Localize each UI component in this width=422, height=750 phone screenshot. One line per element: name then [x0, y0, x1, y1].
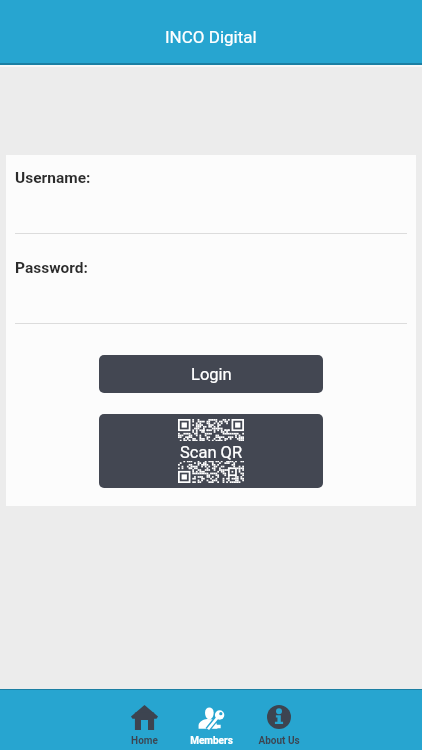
staticText: Members	[190, 735, 233, 747]
other: About Us	[267, 705, 291, 729]
staticText: Password:	[15, 259, 88, 277]
staticText: Home	[131, 735, 158, 747]
button[interactable]: Home	[111, 690, 178, 750]
staticText: Login	[191, 365, 232, 384]
button[interactable]: Scan QR	[99, 414, 323, 488]
staticText: About Us	[258, 735, 300, 747]
staticText: Scan QR	[180, 443, 243, 462]
button[interactable]: About Us	[245, 690, 312, 750]
button[interactable]: Members	[178, 690, 245, 750]
other: Members	[198, 705, 225, 730]
button[interactable]: Username:	[6, 160, 416, 234]
button[interactable]: Password:	[6, 250, 416, 324]
staticText: INCO Digital	[165, 27, 257, 47]
button[interactable]: Login	[99, 355, 323, 393]
other: Home	[131, 705, 158, 730]
staticText: Username:	[15, 169, 91, 187]
